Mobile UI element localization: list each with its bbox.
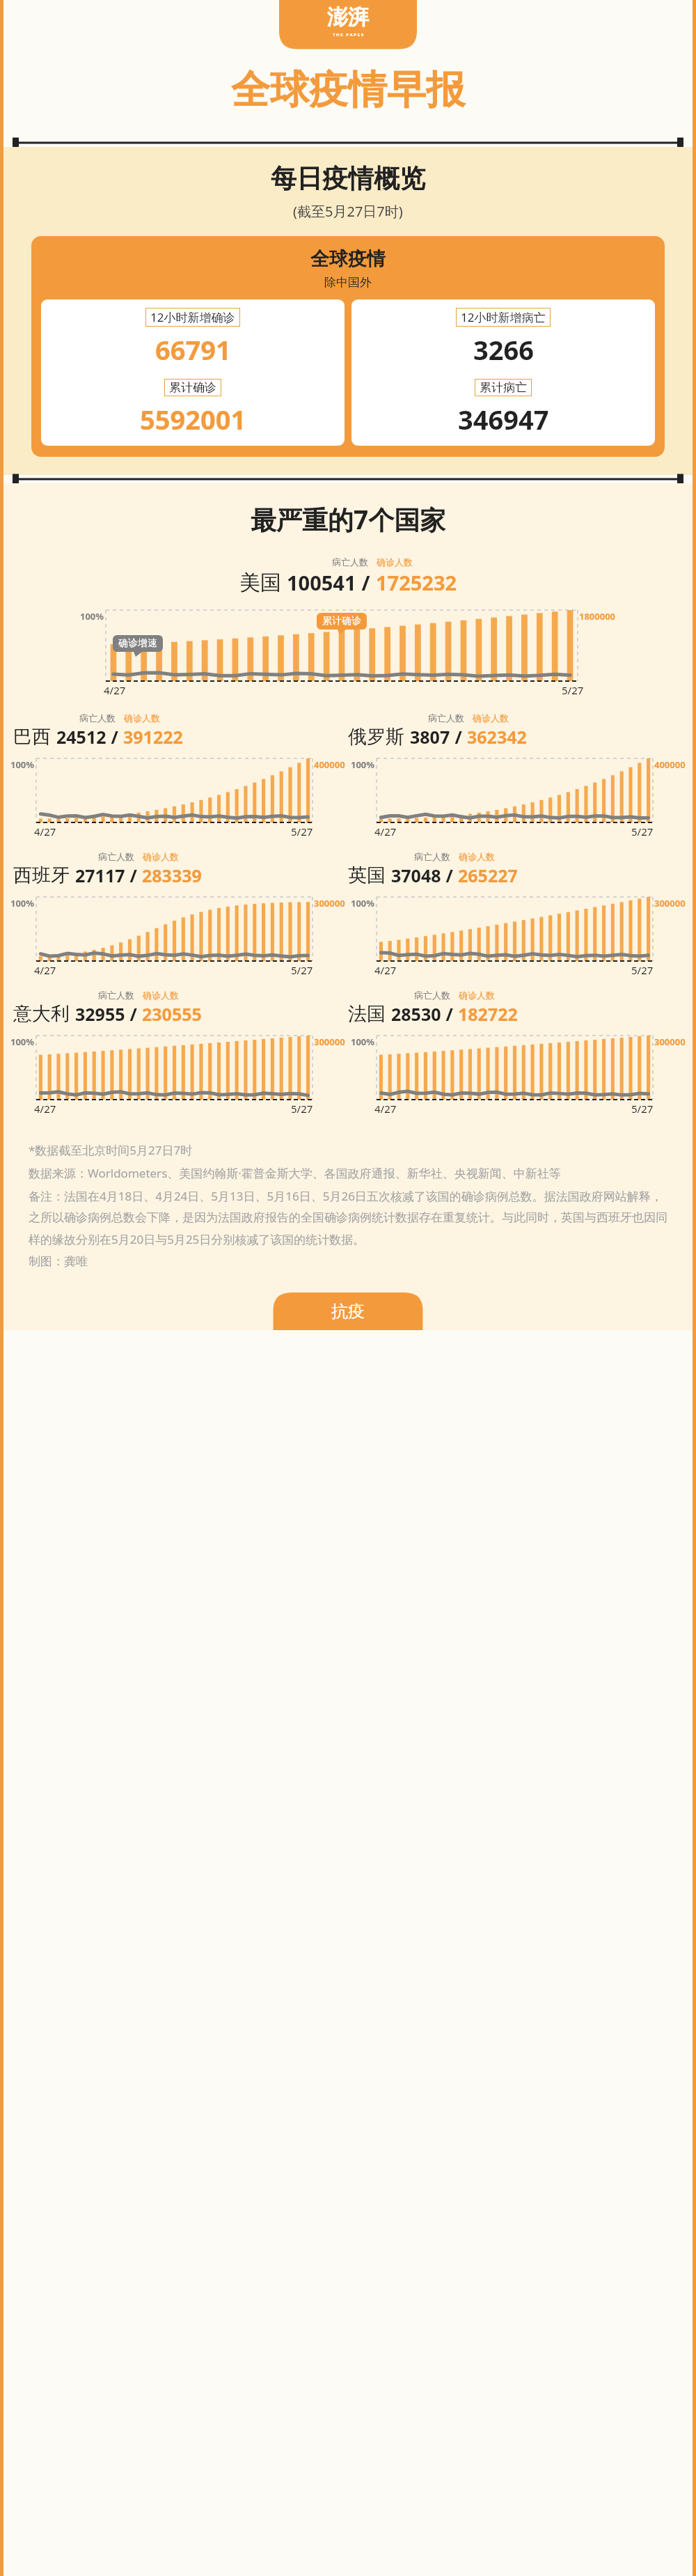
staticText: 5/27: [631, 1102, 654, 1116]
staticText: 100%: [10, 897, 35, 910]
staticText: 5/27: [291, 1102, 313, 1116]
staticText: 4/27: [34, 963, 56, 977]
staticText: 5/27: [631, 825, 654, 838]
staticText: 24512: [56, 725, 106, 749]
staticText: 346947: [458, 401, 549, 437]
staticText: 100%: [351, 758, 375, 771]
staticText: (截至5月27日7时): [293, 202, 403, 221]
staticText: 27117: [75, 864, 125, 887]
staticText: 全球疫情: [310, 247, 386, 271]
staticText: 每日疫情概览: [271, 162, 425, 195]
staticText: *数据截至北京时间5月27日7时: [29, 1142, 193, 1158]
staticText: 确诊增速: [118, 637, 157, 650]
staticText: 4/27: [34, 825, 56, 838]
staticText: 美国: [239, 570, 281, 596]
staticText: 全球疫情早报: [231, 65, 465, 115]
staticText: 确诊人数: [143, 851, 179, 862]
staticText: 确诊人数: [124, 712, 160, 724]
staticText: 病亡人数: [79, 712, 116, 724]
staticText: 4/27: [374, 1102, 397, 1116]
staticText: 备注：法国在4月18日、4月24日、5月13日、5月16日、5月26日五次核减了…: [29, 1188, 667, 1247]
staticText: 抗疫: [331, 1301, 365, 1322]
staticText: /: [356, 569, 376, 596]
button[interactable]: 全球疫情: [31, 236, 665, 457]
staticText: 100%: [80, 610, 104, 623]
staticText: 100%: [10, 758, 35, 771]
staticText: 300000: [654, 897, 686, 910]
staticText: 300000: [654, 1036, 686, 1048]
staticText: 1800000: [579, 610, 616, 623]
staticText: 确诊人数: [459, 990, 495, 1001]
button[interactable]: 抗疫: [331, 1293, 365, 1330]
staticText: 法国: [348, 1002, 386, 1026]
staticText: 澎湃: [327, 4, 369, 31]
staticText: 37048: [391, 864, 441, 887]
staticText: 400000: [314, 758, 345, 771]
staticText: 1725232: [376, 569, 457, 596]
staticText: 100%: [10, 1036, 35, 1048]
staticText: 病亡人数: [332, 556, 368, 568]
staticText: /: [441, 864, 458, 887]
staticText: 累计确诊: [169, 380, 216, 395]
staticText: 巴西: [13, 725, 51, 749]
staticText: 100%: [351, 1036, 375, 1048]
staticText: 制图：龚唯: [29, 1254, 88, 1269]
staticText: /: [450, 725, 467, 749]
staticText: 确诊人数: [143, 990, 179, 1001]
staticText: 4/27: [34, 1102, 56, 1116]
staticText: 28530: [391, 1002, 441, 1026]
staticText: 确诊人数: [377, 556, 413, 568]
staticText: 病亡人数: [98, 851, 134, 862]
staticText: 32955: [75, 1002, 125, 1026]
button[interactable]: 12小时新增确诊: [41, 299, 345, 446]
staticText: 5/27: [631, 963, 654, 977]
staticText: /: [106, 725, 123, 749]
staticText: 累计确诊: [322, 615, 361, 627]
staticText: 累计病亡: [480, 380, 527, 395]
staticText: 5592001: [140, 401, 246, 437]
staticText: 病亡人数: [414, 990, 450, 1001]
staticText: 4/27: [374, 963, 397, 977]
staticText: 西班牙: [13, 864, 70, 887]
staticText: 5/27: [562, 683, 584, 697]
staticText: 12小时新增确诊: [150, 309, 235, 325]
staticText: 3807: [410, 725, 450, 749]
staticText: 3266: [473, 331, 534, 368]
staticText: 100%: [351, 897, 375, 910]
staticText: 意大利: [13, 1002, 70, 1026]
staticText: 100541: [287, 569, 356, 596]
staticText: 4/27: [374, 825, 397, 838]
staticText: 265227: [458, 864, 518, 887]
staticText: 病亡人数: [428, 712, 464, 724]
staticText: 300000: [314, 897, 345, 910]
staticText: 230555: [142, 1002, 202, 1026]
staticText: /: [125, 1002, 142, 1026]
staticText: 俄罗斯: [348, 725, 404, 749]
staticText: 除中国外: [324, 275, 372, 290]
staticText: /: [441, 1002, 458, 1026]
staticText: 病亡人数: [98, 990, 134, 1001]
staticText: 391222: [123, 725, 183, 749]
staticText: 400000: [654, 758, 686, 771]
staticText: 数据来源：Worldometers、美国约翰斯·霍普金斯大学、各国政府通报、新华…: [29, 1165, 561, 1181]
staticText: T H E P A P E R: [333, 32, 364, 38]
staticText: 66791: [155, 331, 231, 368]
staticText: 确诊人数: [473, 712, 509, 724]
staticText: 283339: [142, 864, 202, 887]
staticText: 5/27: [291, 825, 313, 838]
staticText: 182722: [458, 1002, 518, 1026]
staticText: 确诊人数: [459, 851, 495, 862]
staticText: 最严重的7个国家: [251, 501, 446, 537]
staticText: 300000: [314, 1036, 345, 1048]
staticText: 362342: [467, 725, 527, 749]
staticText: 5/27: [291, 963, 313, 977]
staticText: 12小时新增病亡: [461, 309, 546, 325]
staticText: 英国: [348, 864, 386, 887]
button[interactable]: 12小时新增病亡: [351, 299, 655, 446]
staticText: 4/27: [104, 683, 126, 697]
staticText: /: [125, 864, 142, 887]
staticText: 病亡人数: [414, 851, 450, 862]
